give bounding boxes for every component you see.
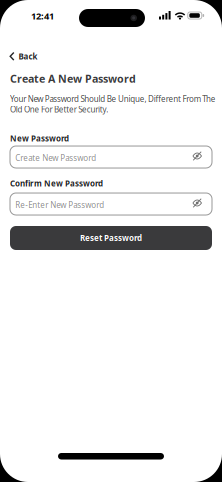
- staticText: Old One For Better Security.: [10, 104, 108, 115]
- button[interactable]: Back: [9, 51, 37, 62]
- staticText: Confirm New Password: [10, 178, 103, 189]
- button[interactable]: Re-Enter New Password: [10, 193, 212, 215]
- staticText: Re-Enter New Password: [15, 200, 104, 210]
- staticText: Create New Password: [15, 153, 96, 163]
- staticText: 12:41: [31, 10, 54, 22]
- button[interactable]: Reset Password: [10, 226, 212, 250]
- staticText: Reset Password: [80, 233, 142, 243]
- staticText: New Password: [10, 133, 69, 144]
- staticText: Your New Password Should Be Unique, Diff…: [10, 93, 216, 104]
- staticText: Back: [18, 51, 37, 62]
- staticText: Create A New Password: [10, 71, 136, 86]
- button[interactable]: Create New Password: [10, 146, 212, 168]
